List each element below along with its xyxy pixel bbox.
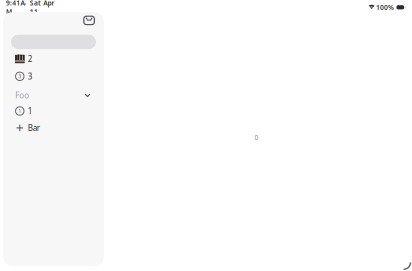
- staticText: Sat Apr 11: [30, 0, 54, 16]
- staticText: Foo: [15, 90, 29, 101]
- button[interactable]: 1: [3, 102, 104, 120]
- staticText: 1: [28, 106, 33, 116]
- staticText: 3: [18, 73, 21, 80]
- staticText: 100%: [376, 3, 394, 12]
- staticText: Bar: [28, 123, 40, 133]
- button[interactable]: 2: [3, 50, 104, 68]
- staticText: 2: [28, 54, 33, 64]
- button[interactable]: Foo: [3, 87, 104, 104]
- button[interactable]: 3: [3, 68, 104, 85]
- button[interactable]: New note: [81, 13, 97, 27]
- staticText: 0: [254, 133, 258, 142]
- staticText: 9:41AM: [6, 0, 26, 16]
- staticText: 3: [28, 71, 33, 82]
- button[interactable]: Bar: [3, 119, 104, 137]
- staticText: 1: [18, 107, 21, 114]
